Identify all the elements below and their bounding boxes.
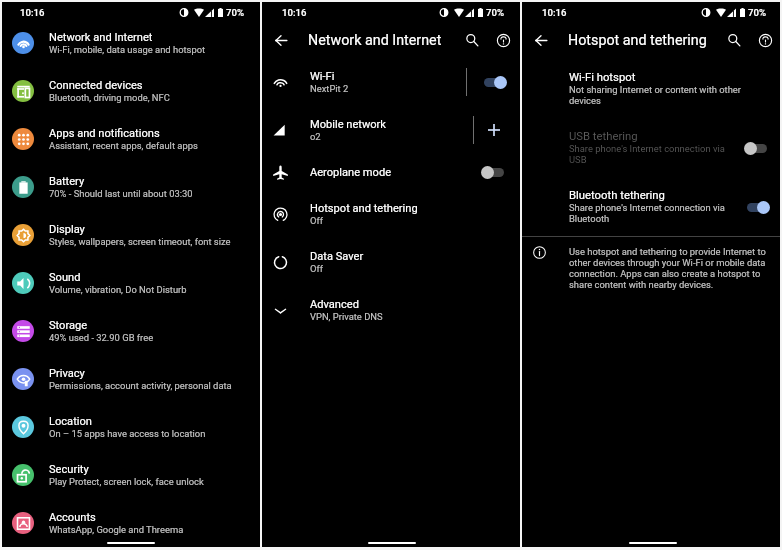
staticText: Use hotspot and tethering to provide Int…	[569, 246, 776, 290]
staticText: Data Saver	[310, 250, 364, 263]
staticText: 70%	[226, 7, 244, 18]
button[interactable]: Battery	[0, 163, 260, 211]
staticText: Display	[49, 223, 85, 236]
staticText: Aeroplane mode	[310, 166, 392, 179]
staticText: Hotspot and tethering	[568, 32, 707, 49]
button[interactable]: Add network	[483, 119, 505, 141]
staticText: o2	[310, 131, 321, 142]
staticText: Apps and notifications	[49, 127, 160, 140]
button[interactable]: Wi-Fi	[262, 58, 520, 106]
staticText: 10:16	[542, 7, 567, 18]
button[interactable]: Turn on	[744, 141, 770, 155]
button[interactable]: Network and Internet	[0, 19, 260, 67]
staticText: Styles, wallpapers, screen timeout, font…	[49, 236, 231, 247]
staticText: Play Protect, screen lock, face unlock	[49, 476, 204, 487]
button[interactable]: Sound	[0, 259, 260, 307]
staticText: On – 15 apps have access to location	[49, 428, 206, 439]
button[interactable]: Aeroplane mode	[262, 154, 520, 190]
staticText: Volume, vibration, Do Not Disturb	[49, 284, 187, 295]
staticText: Off	[310, 263, 323, 274]
staticText: WhatsApp, Google and Threema	[49, 524, 184, 535]
staticText: Share phone's Internet connection via US…	[569, 143, 744, 165]
button[interactable]: Bluetooth tethering	[522, 177, 782, 236]
staticText: Wi-Fi hotspot	[569, 71, 636, 84]
button[interactable]: Connected devices	[0, 67, 260, 115]
button[interactable]: Turn on	[481, 165, 507, 179]
staticText: Wi-Fi	[310, 70, 335, 83]
staticText: Location	[49, 415, 92, 428]
staticText: 70%	[748, 7, 766, 18]
staticText: Battery	[49, 175, 85, 188]
staticText: Permissions, account activity, personal …	[49, 380, 232, 391]
button[interactable]: Wi-Fi hotspot	[522, 58, 782, 118]
button[interactable]: Turn off	[481, 75, 507, 89]
button[interactable]: Accounts	[0, 499, 260, 547]
staticText: Share phone's Internet connection via Bl…	[569, 202, 744, 224]
staticText: Connected devices	[49, 79, 143, 92]
button[interactable]: Data Saver	[262, 238, 520, 286]
button[interactable]: Back	[270, 29, 292, 51]
staticText: Wi-Fi, mobile, data usage and hotspot	[49, 44, 206, 55]
staticText: VPN, Private DNS	[310, 311, 383, 322]
staticText: 70%	[486, 7, 504, 18]
button[interactable]: Help	[752, 27, 778, 53]
button[interactable]: Turn off	[744, 200, 770, 214]
button[interactable]: Mobile network	[262, 106, 520, 154]
staticText: Sound	[49, 271, 81, 284]
button[interactable]: Privacy	[0, 355, 260, 403]
button[interactable]: Hotspot and tethering	[262, 190, 520, 238]
staticText: Mobile network	[310, 118, 386, 131]
button[interactable]: Apps and notifications	[0, 115, 260, 163]
button[interactable]: Security	[0, 451, 260, 499]
button[interactable]: Location	[0, 403, 260, 451]
staticText: Bluetooth, driving mode, NFC	[49, 92, 170, 103]
staticText: Hotspot and tethering	[310, 202, 418, 215]
button[interactable]: Display	[0, 211, 260, 259]
staticText: Network and Internet	[49, 31, 153, 44]
button[interactable]: Back	[530, 29, 552, 51]
button[interactable]: Advanced	[262, 286, 520, 334]
staticText: Security	[49, 463, 89, 476]
staticText: Advanced	[310, 298, 359, 311]
staticText: 49% used - 32.90 GB free	[49, 332, 154, 343]
button[interactable]: Help	[490, 27, 516, 53]
staticText: Storage	[49, 319, 88, 332]
staticText: Network and Internet	[308, 32, 442, 49]
staticText: USB tethering	[569, 130, 638, 143]
button[interactable]: Search	[722, 28, 746, 52]
staticText: Privacy	[49, 367, 85, 380]
staticText: Accounts	[49, 511, 96, 524]
staticText: NextPit 2	[310, 83, 349, 94]
staticText: Not sharing Internet or content with oth…	[569, 84, 744, 106]
staticText: 10:16	[20, 7, 45, 18]
staticText: 10:16	[282, 7, 307, 18]
button[interactable]: USB tethering	[522, 118, 782, 177]
staticText: Off	[310, 215, 323, 226]
staticText: Bluetooth tethering	[569, 189, 665, 202]
button[interactable]: Storage	[0, 307, 260, 355]
staticText: 70% - Should last until about 03:30	[49, 188, 193, 199]
button[interactable]: Search	[460, 28, 484, 52]
staticText: Assistant, recent apps, default apps	[49, 140, 198, 151]
